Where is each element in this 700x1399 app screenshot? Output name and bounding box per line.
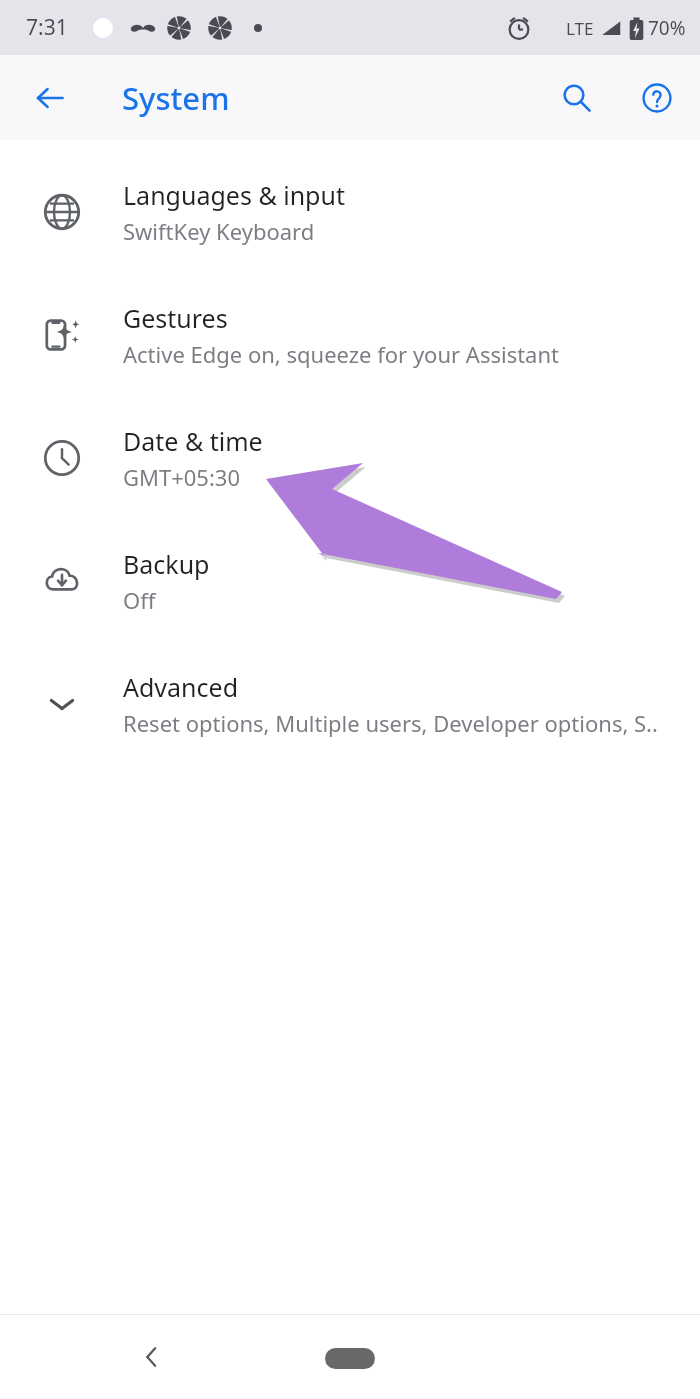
button[interactable]: Languages and input — [0, 150, 700, 273]
button[interactable]: Search — [549, 70, 605, 126]
staticText: Off — [123, 585, 156, 615]
button[interactable]: Help — [629, 70, 685, 126]
button[interactable]: Home — [314, 1339, 386, 1377]
button[interactable]: Backup — [0, 519, 700, 642]
staticText: 7:31 — [26, 13, 68, 42]
staticText: GMT+05:30 — [123, 462, 241, 492]
staticText: Backup — [123, 547, 210, 581]
staticText: 70% — [648, 15, 686, 41]
staticText: LTE — [566, 17, 594, 40]
other: Expand advanced — [43, 685, 81, 723]
staticText: Gestures — [123, 301, 228, 335]
staticText: Languages & input — [123, 178, 345, 212]
button[interactable]: Back — [22, 70, 78, 126]
staticText: Advanced — [123, 670, 239, 704]
other: Date and time — [43, 439, 81, 477]
button[interactable]: Expand advanced — [0, 642, 700, 765]
staticText: Active Edge on, squeeze for your Assista… — [123, 339, 559, 369]
staticText: Date & time — [123, 424, 263, 458]
other: Backup — [43, 562, 81, 600]
other: Gestures — [43, 316, 81, 354]
other: Languages and input — [43, 193, 81, 231]
staticText: System — [122, 77, 230, 119]
button[interactable]: Back — [124, 1329, 180, 1385]
staticText: SwiftKey Keyboard — [123, 216, 315, 246]
button[interactable]: Gestures — [0, 273, 700, 396]
staticText: Reset options, Multiple users, Developer… — [123, 708, 658, 738]
button[interactable]: Date and time — [0, 396, 700, 519]
